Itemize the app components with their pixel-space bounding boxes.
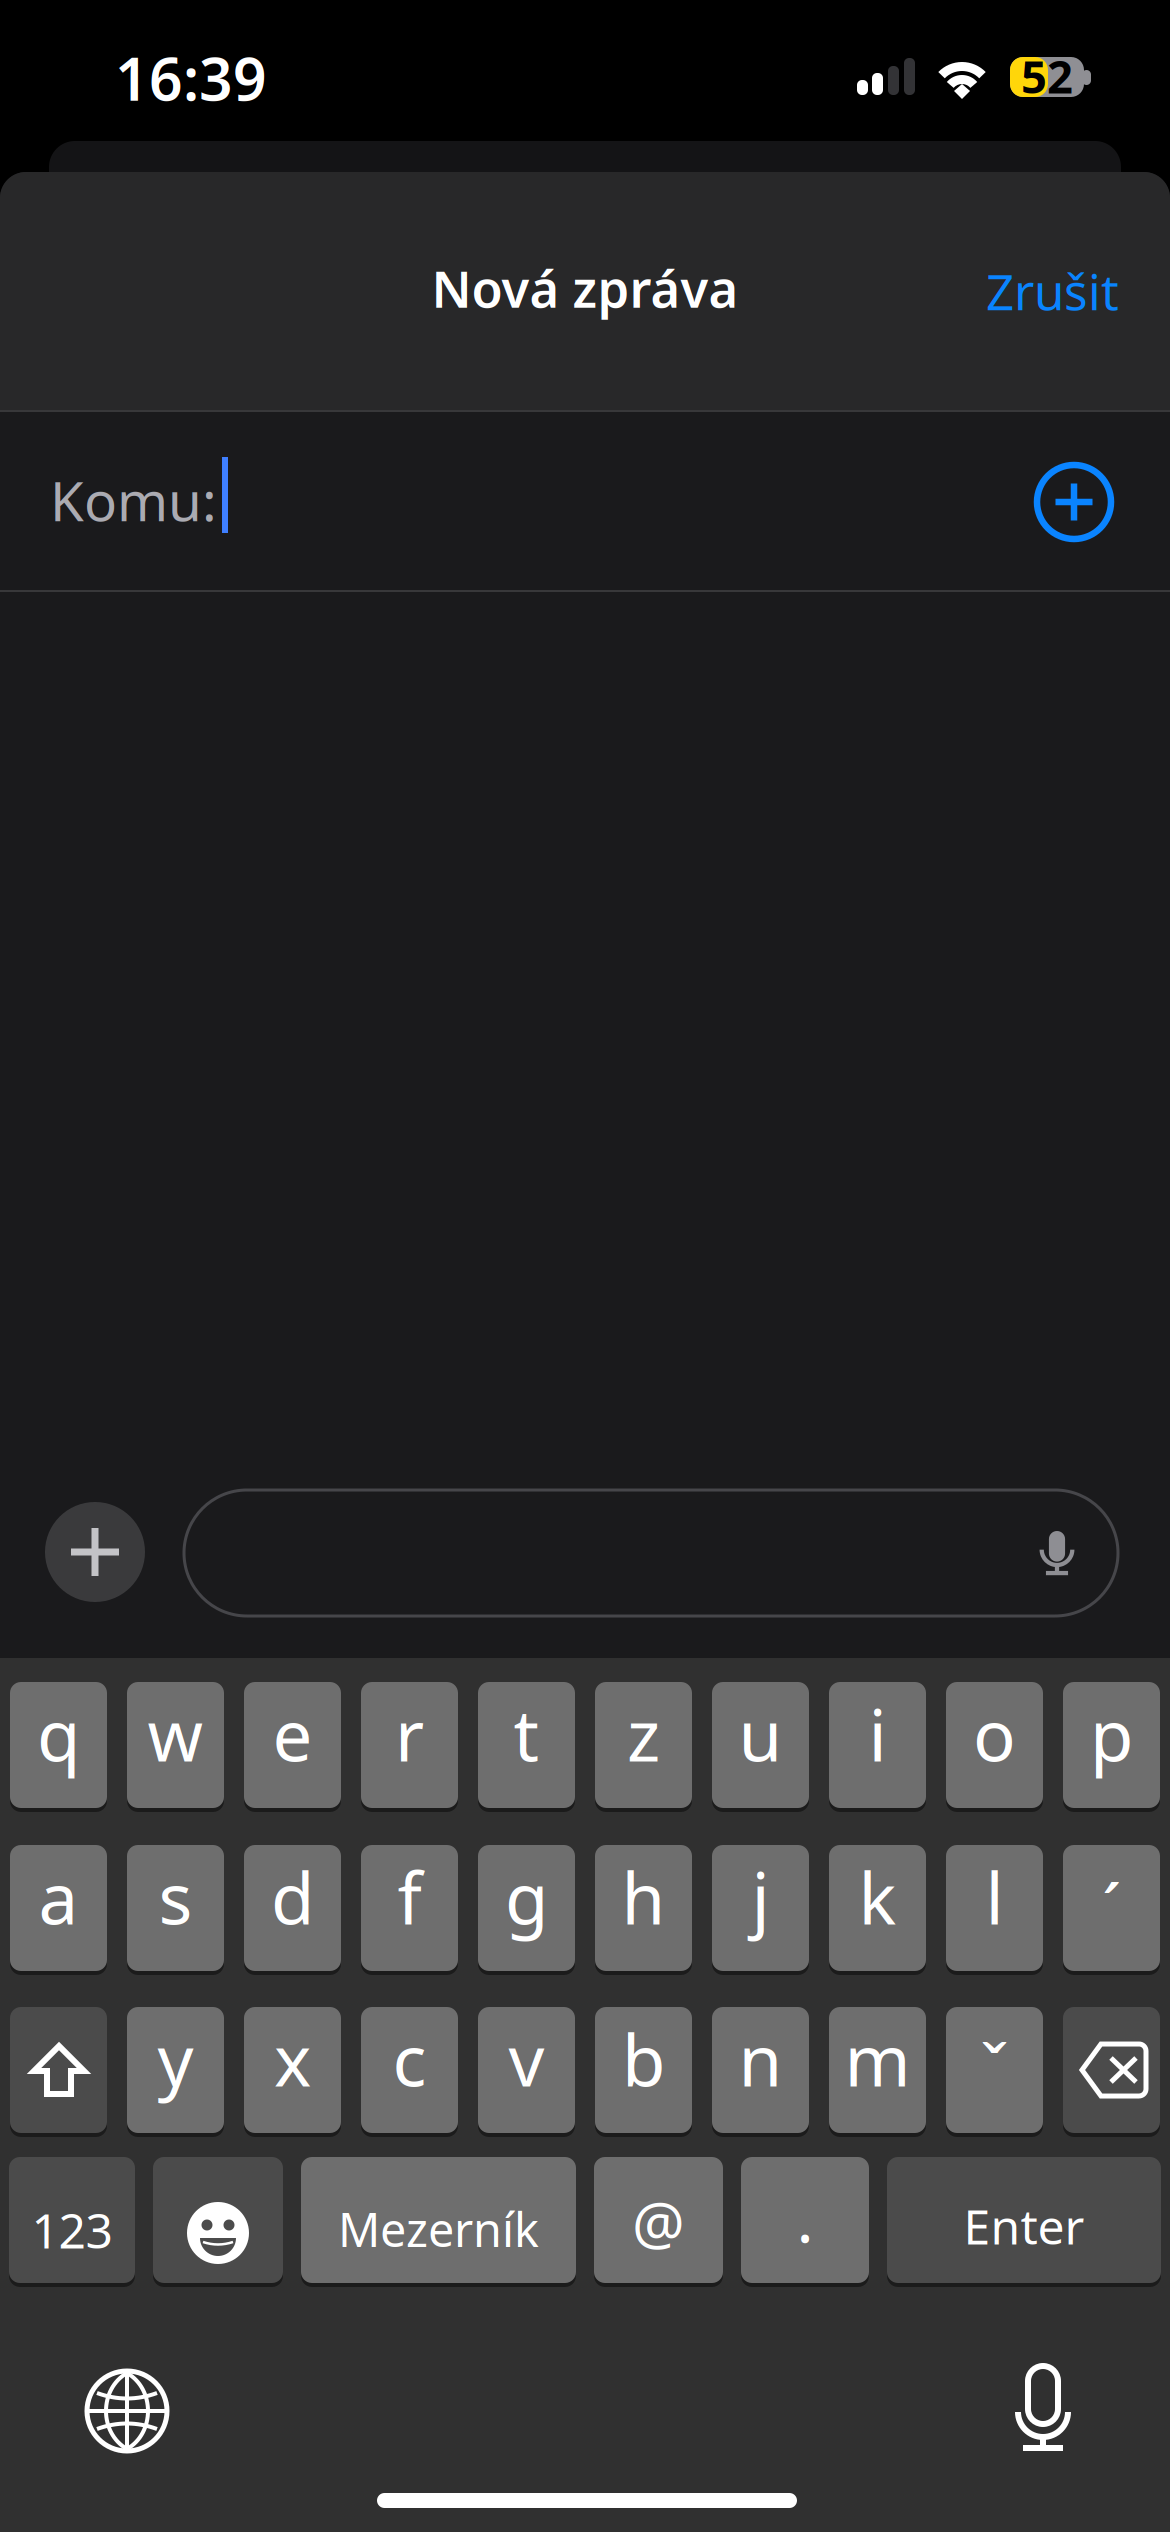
button[interactable]: k bbox=[829, 1845, 926, 1975]
button[interactable]: c bbox=[361, 2007, 458, 2137]
button[interactable]: q bbox=[10, 1682, 107, 1812]
button[interactable]: t bbox=[478, 1682, 575, 1812]
staticText: s bbox=[158, 1850, 192, 1944]
button[interactable]: u bbox=[712, 1682, 809, 1812]
button[interactable]: 123 bbox=[9, 2157, 135, 2287]
button[interactable]: h bbox=[595, 1845, 692, 1975]
button[interactable]: Message field bbox=[184, 1490, 1118, 1616]
staticText: p bbox=[1090, 1687, 1133, 1781]
staticText: m bbox=[844, 2012, 910, 2106]
button[interactable]: f bbox=[361, 1845, 458, 1975]
staticText: n bbox=[738, 2012, 782, 2106]
staticText: a bbox=[38, 1850, 78, 1944]
button[interactable]: v bbox=[478, 2007, 575, 2137]
staticText: f bbox=[397, 1850, 421, 1944]
button[interactable]: l bbox=[946, 1845, 1043, 1975]
staticText: . bbox=[796, 2175, 813, 2260]
staticText: k bbox=[858, 1850, 896, 1944]
button[interactable]: p bbox=[1063, 1682, 1160, 1812]
button[interactable]: ´ bbox=[1063, 1845, 1160, 1975]
staticText: v bbox=[508, 2012, 544, 2106]
button[interactable]: o bbox=[946, 1682, 1043, 1812]
staticText: z bbox=[627, 1687, 660, 1781]
staticText: q bbox=[37, 1687, 80, 1781]
button[interactable]: j bbox=[712, 1845, 809, 1975]
button[interactable]: Emoji bbox=[153, 2157, 283, 2287]
button[interactable]: Mezerník bbox=[301, 2157, 576, 2287]
button[interactable]: Next keyboard bbox=[87, 2371, 167, 2451]
staticText: ´ bbox=[1102, 1862, 1121, 1954]
button[interactable]: r bbox=[361, 1682, 458, 1812]
staticText: Komu: bbox=[50, 464, 217, 536]
button[interactable]: i bbox=[829, 1682, 926, 1812]
button[interactable]: m bbox=[829, 2007, 926, 2137]
staticText: w bbox=[147, 1687, 203, 1781]
button[interactable]: d bbox=[244, 1845, 341, 1975]
staticText: t bbox=[513, 1687, 539, 1781]
staticText: u bbox=[738, 1687, 782, 1781]
staticText: c bbox=[392, 2012, 426, 2106]
button[interactable]: g bbox=[478, 1845, 575, 1975]
button[interactable]: y bbox=[127, 2007, 224, 2137]
button[interactable]: @ bbox=[594, 2157, 723, 2287]
staticText: Zrušit bbox=[986, 258, 1119, 324]
staticText: g bbox=[505, 1850, 548, 1944]
staticText: y bbox=[157, 2012, 193, 2106]
button[interactable]: Add contact bbox=[1037, 465, 1111, 539]
button[interactable]: a bbox=[10, 1845, 107, 1975]
button[interactable]: z bbox=[595, 1682, 692, 1812]
staticText: r bbox=[395, 1687, 424, 1781]
button[interactable]: Enter bbox=[887, 2157, 1161, 2287]
staticText: 52 bbox=[1021, 46, 1073, 106]
staticText: o bbox=[973, 1687, 1016, 1781]
button[interactable]: n bbox=[712, 2007, 809, 2137]
staticText: d bbox=[271, 1850, 314, 1944]
staticText: @ bbox=[632, 2183, 685, 2261]
button[interactable]: b bbox=[595, 2007, 692, 2137]
button[interactable]: w bbox=[127, 1682, 224, 1812]
staticText: b bbox=[622, 2012, 665, 2106]
button[interactable]: e bbox=[244, 1682, 341, 1812]
staticText: i bbox=[868, 1687, 886, 1781]
button[interactable]: Delete bbox=[1063, 2007, 1160, 2137]
button[interactable]: Shift bbox=[10, 2007, 107, 2137]
button[interactable]: Zrušit bbox=[939, 241, 1119, 341]
staticText: 123 bbox=[31, 2198, 112, 2262]
button[interactable]: ˇ bbox=[946, 2007, 1043, 2137]
staticText: x bbox=[274, 2012, 311, 2106]
staticText: h bbox=[621, 1850, 665, 1944]
staticText: l bbox=[985, 1850, 1003, 1944]
staticText: e bbox=[272, 1687, 312, 1781]
staticText: 16:39 bbox=[115, 39, 267, 117]
button[interactable]: Nová zpráva bbox=[285, 238, 885, 338]
staticText: Nová zpráva bbox=[431, 254, 738, 322]
staticText: j bbox=[751, 1850, 769, 1944]
button[interactable]: x bbox=[244, 2007, 341, 2137]
button[interactable]: More options bbox=[45, 1502, 145, 1602]
button[interactable]: s bbox=[127, 1845, 224, 1975]
button[interactable]: Dictation bbox=[1014, 2364, 1072, 2452]
staticText: ˇ bbox=[980, 2022, 1009, 2114]
staticText: Mezerník bbox=[338, 2198, 539, 2260]
staticText: Enter bbox=[963, 2194, 1084, 2258]
button[interactable]: . bbox=[741, 2157, 869, 2287]
